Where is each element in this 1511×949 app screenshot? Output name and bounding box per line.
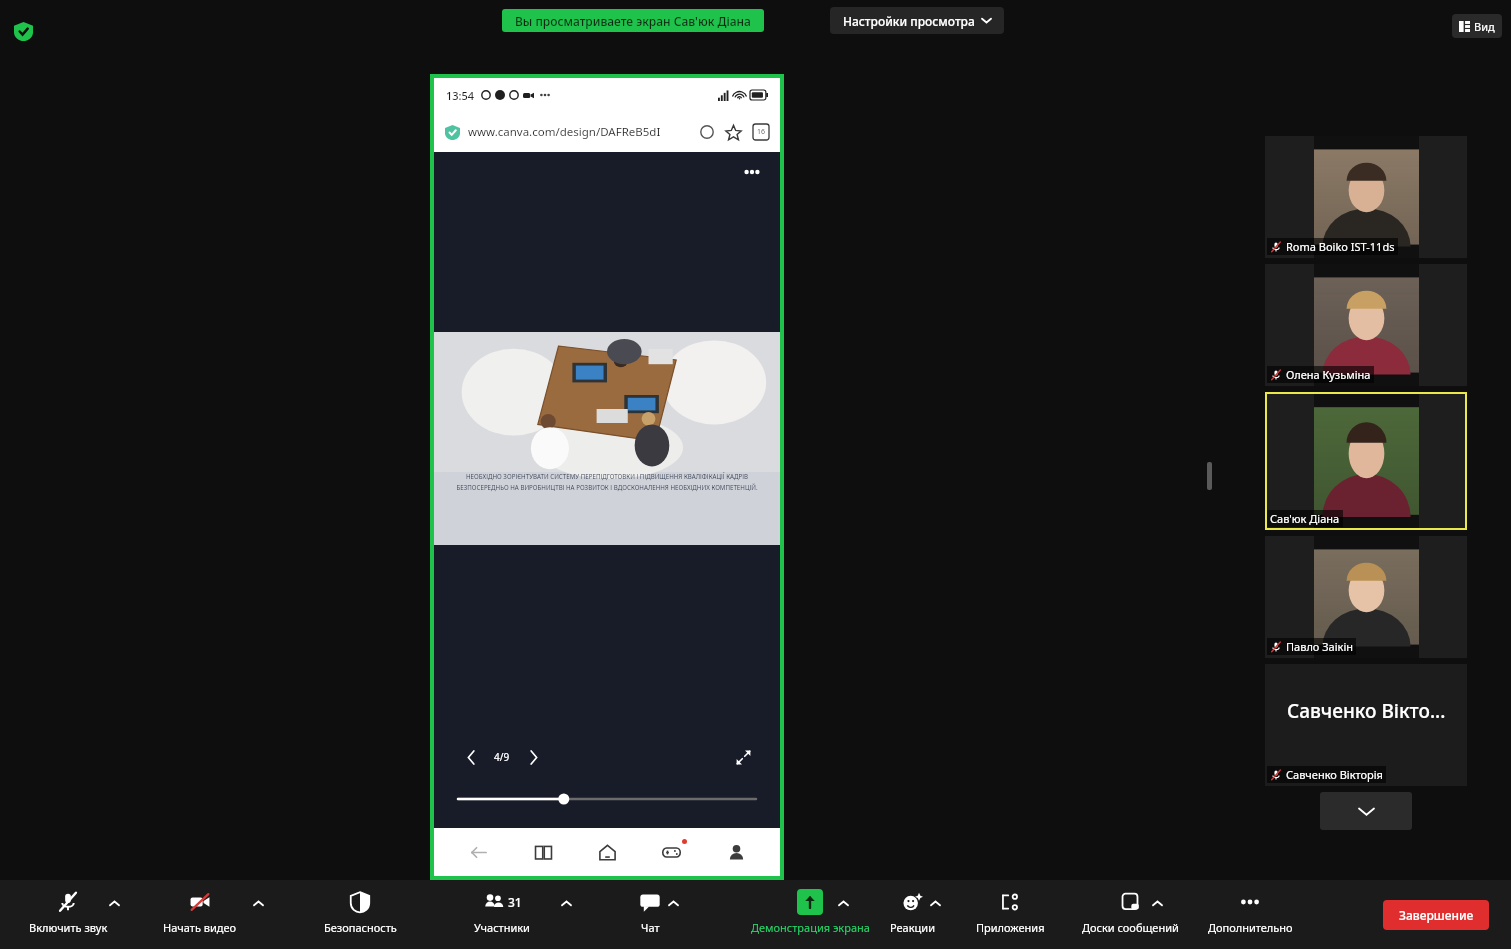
button[interactable]: More options [663, 893, 683, 913]
button[interactable]: Чат [600, 880, 700, 949]
staticText: 31 [508, 894, 522, 910]
staticText: Савченко Вікто... [1287, 698, 1446, 724]
button[interactable]: Bookmark [725, 124, 742, 141]
button[interactable]: Resize panel [1207, 462, 1212, 490]
button[interactable]: Roma Boiko IST-11ds [1265, 136, 1467, 258]
button[interactable]: Реакции [862, 880, 962, 949]
button[interactable]: Дополнительно [1200, 880, 1300, 949]
staticText: Безопасность [324, 920, 397, 935]
staticText: НЕОБХІДНО ЗОРІЄНТУВАТИ СИСТЕМУ ПЕРЕПІДГО… [452, 472, 762, 491]
button[interactable]: Profile [716, 832, 756, 872]
button[interactable]: Безопасность [310, 880, 410, 949]
staticText: Сав'юк Діана [1270, 511, 1340, 526]
button[interactable]: More options [248, 893, 268, 913]
button[interactable]: Сав'юк Діана [1265, 392, 1467, 530]
button[interactable]: More options [104, 893, 124, 913]
button[interactable]: Завершение [1383, 900, 1489, 930]
button[interactable]: More options [556, 893, 576, 913]
staticText: Завершение [1399, 907, 1474, 923]
button[interactable]: Home [587, 832, 627, 872]
button[interactable]: Encryption status [10, 18, 36, 44]
button[interactable]: Олена Кузьміна [1265, 264, 1467, 386]
button[interactable]: Previous slide [458, 744, 484, 770]
staticText: Включить звук [29, 920, 108, 935]
staticText: Демонстрация экрана [751, 920, 870, 935]
button[interactable]: Вы просматриваете экран Сав'юк Діана [502, 9, 764, 32]
button[interactable]: Scroll down [1320, 792, 1412, 830]
button[interactable]: Games [651, 832, 691, 872]
staticText: Вы просматриваете экран Сав'юк Діана [515, 13, 751, 29]
button[interactable]: Collapse [730, 744, 756, 770]
staticText: Доски сообщений [1082, 920, 1179, 935]
button[interactable]: More options [925, 893, 945, 913]
button[interactable]: Начать видео [150, 880, 250, 949]
staticText: Участники [474, 920, 530, 935]
button[interactable]: Демонстрация экрана [735, 880, 885, 949]
staticText: 13:54 [446, 88, 475, 103]
staticText: Приложения [976, 920, 1045, 935]
staticText: Начать видео [163, 920, 237, 935]
button[interactable]: Bookmarks [523, 832, 563, 872]
button[interactable]: More options [740, 160, 764, 184]
button[interactable]: More options [833, 893, 853, 913]
button[interactable]: More options [1147, 893, 1167, 913]
staticText: 16 [757, 127, 766, 137]
staticText: Вид [1474, 19, 1495, 34]
staticText: Реакции [890, 920, 935, 935]
button[interactable]: Back [458, 832, 498, 872]
staticText: 4/9 [494, 750, 510, 764]
staticText: Настройки просмотра [843, 13, 975, 29]
staticText: Павло Заікін [1286, 639, 1353, 654]
button[interactable]: www.canva.com/design/DAFReB5dI [434, 112, 780, 152]
staticText: Дополнительно [1208, 920, 1293, 935]
staticText: Чат [641, 920, 660, 935]
button[interactable]: Доски сообщений [1080, 880, 1180, 949]
button[interactable] [458, 792, 756, 806]
button[interactable]: Next slide [520, 744, 546, 770]
button[interactable]: Савченко Вікто... [1265, 664, 1467, 786]
button[interactable]: Павло Заікін [1265, 536, 1467, 658]
staticText: Roma Boiko IST-11ds [1286, 239, 1395, 254]
button[interactable]: Tabs [753, 124, 769, 140]
button[interactable]: Включить звук [18, 880, 118, 949]
button[interactable]: 31 [452, 880, 552, 949]
staticText: www.canva.com/design/DAFReB5dI [468, 124, 661, 140]
staticText: Олена Кузьміна [1286, 367, 1371, 382]
staticText: Савченко Вікторія [1286, 767, 1383, 782]
button[interactable]: Настройки просмотра [830, 7, 1004, 34]
button[interactable]: Приложения [960, 880, 1060, 949]
button[interactable]: Вид [1452, 14, 1502, 38]
